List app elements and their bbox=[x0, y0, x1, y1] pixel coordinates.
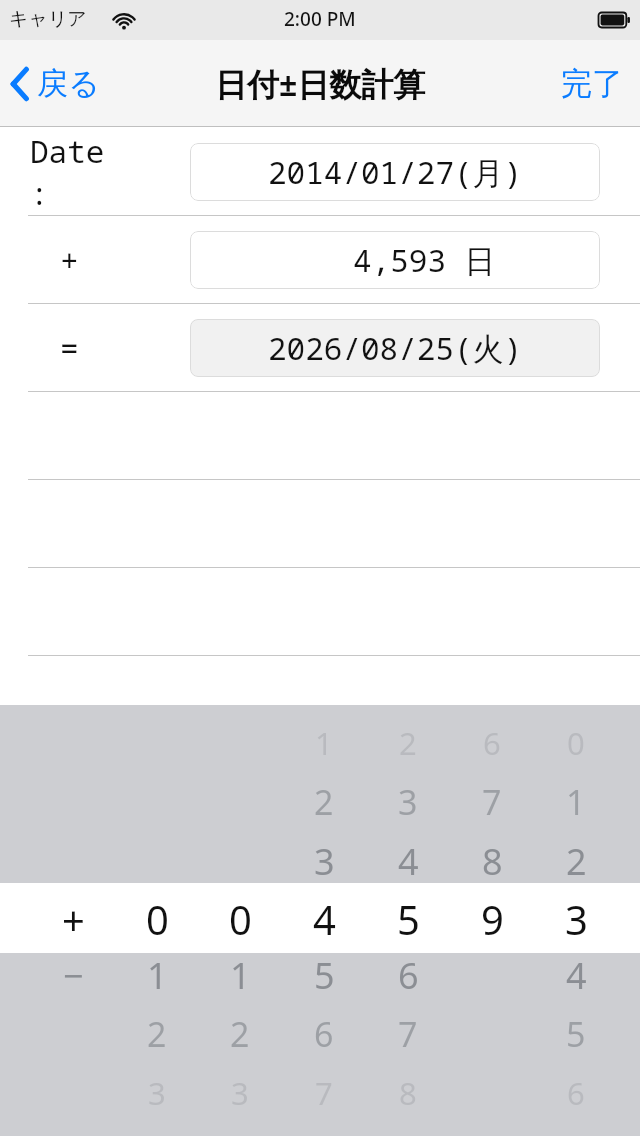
staticText: Date: bbox=[30, 130, 108, 214]
staticText: 完了 bbox=[561, 64, 623, 103]
button[interactable]: 4,593 日 bbox=[190, 231, 600, 289]
staticText: 5 bbox=[566, 1011, 586, 1057]
staticText: 3 bbox=[565, 892, 588, 944]
staticText: 0 bbox=[146, 892, 169, 944]
button[interactable]: 戻る bbox=[0, 40, 114, 127]
staticText: 8 bbox=[482, 837, 503, 886]
staticText: = bbox=[60, 327, 79, 369]
staticText: 2 bbox=[230, 1011, 250, 1057]
staticText: 1 bbox=[315, 722, 333, 764]
staticText: 1 bbox=[147, 951, 168, 1000]
staticText: 9 bbox=[481, 892, 504, 944]
staticText: 2014/01/27(月) bbox=[268, 151, 523, 193]
button[interactable]: + bbox=[0, 705, 640, 1136]
staticText: 4 bbox=[313, 892, 336, 944]
staticText: 6 bbox=[398, 951, 419, 1000]
staticText: 7 bbox=[315, 1072, 333, 1114]
staticText: 2:00 PM bbox=[284, 6, 356, 32]
staticText: 2 bbox=[147, 1011, 167, 1057]
staticText: 3 bbox=[231, 1072, 249, 1114]
staticText: 6 bbox=[483, 722, 501, 764]
staticText: + bbox=[60, 239, 79, 281]
button[interactable]: 2014/01/27(月) bbox=[190, 143, 600, 201]
staticText: 5 bbox=[397, 892, 420, 944]
staticText: キャリア bbox=[9, 7, 87, 31]
staticText: 7 bbox=[482, 779, 502, 825]
staticText: 8 bbox=[399, 1072, 417, 1114]
staticText: 2 bbox=[399, 722, 417, 764]
staticText: 0 bbox=[567, 722, 585, 764]
staticText: 7 bbox=[398, 1011, 418, 1057]
staticText: 6 bbox=[314, 1011, 334, 1057]
staticText: + bbox=[62, 892, 85, 944]
button[interactable]: 完了 bbox=[544, 40, 640, 127]
staticText: 日付±日数計算 bbox=[215, 62, 426, 106]
staticText: 4 bbox=[566, 951, 587, 1000]
staticText: 2 bbox=[314, 779, 334, 825]
staticText: 3 bbox=[314, 837, 335, 886]
staticText: 戻る bbox=[37, 64, 100, 103]
staticText: 0 bbox=[229, 892, 252, 944]
staticText: − bbox=[63, 951, 84, 1000]
staticText: 3 bbox=[398, 779, 418, 825]
staticText: 6 bbox=[567, 1072, 585, 1114]
staticText: 1 bbox=[230, 951, 251, 1000]
staticText: 5 bbox=[314, 951, 335, 1000]
staticText: 2026/08/25(火) bbox=[268, 327, 523, 369]
staticText: 3 bbox=[148, 1072, 166, 1114]
staticText: 1 bbox=[566, 779, 586, 825]
staticText: 2 bbox=[566, 837, 587, 886]
button[interactable]: 2026/08/25(火) bbox=[190, 319, 600, 377]
staticText: 4,593 日 bbox=[353, 239, 496, 281]
staticText: 4 bbox=[398, 837, 419, 886]
